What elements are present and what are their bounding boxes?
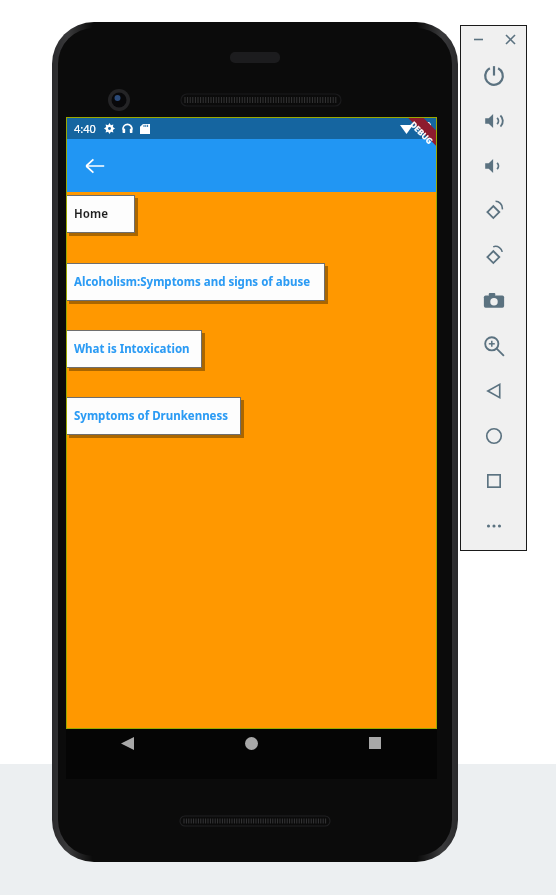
button[interactable]: Alcoholism:Symptoms and signs of abuse [66,263,325,301]
button[interactable]: Back [460,368,527,413]
staticText: Home [74,206,109,222]
button[interactable]: Symptoms of Drunkenness [66,397,241,435]
staticText: Alcoholism:Symptoms and signs of abuse [74,274,311,290]
staticText: DEBUG [408,119,436,146]
button[interactable]: Volume down [460,143,527,188]
button[interactable]: Overview [460,458,527,503]
button[interactable]: What is Intoxication [66,330,202,368]
staticText: 4:40 [74,121,96,136]
button[interactable]: More [460,503,527,548]
button[interactable]: Recent apps [313,729,437,779]
button[interactable]: Minimize [468,29,488,49]
button[interactable]: Close [500,29,520,49]
staticText: What is Intoxication [74,341,190,357]
button[interactable]: Power [460,53,527,98]
button[interactable]: Home [66,195,135,233]
button[interactable]: Rotate left [460,188,527,233]
button[interactable]: Home [460,413,527,458]
button[interactable]: Home [189,729,313,779]
button[interactable]: Volume up [460,98,527,143]
button[interactable]: Back [66,729,189,779]
button[interactable]: Back [76,147,114,185]
button[interactable]: Zoom [460,323,527,368]
button[interactable]: Rotate right [460,233,527,278]
button[interactable]: Screenshot [460,278,527,323]
staticText: Symptoms of Drunkenness [74,408,229,424]
